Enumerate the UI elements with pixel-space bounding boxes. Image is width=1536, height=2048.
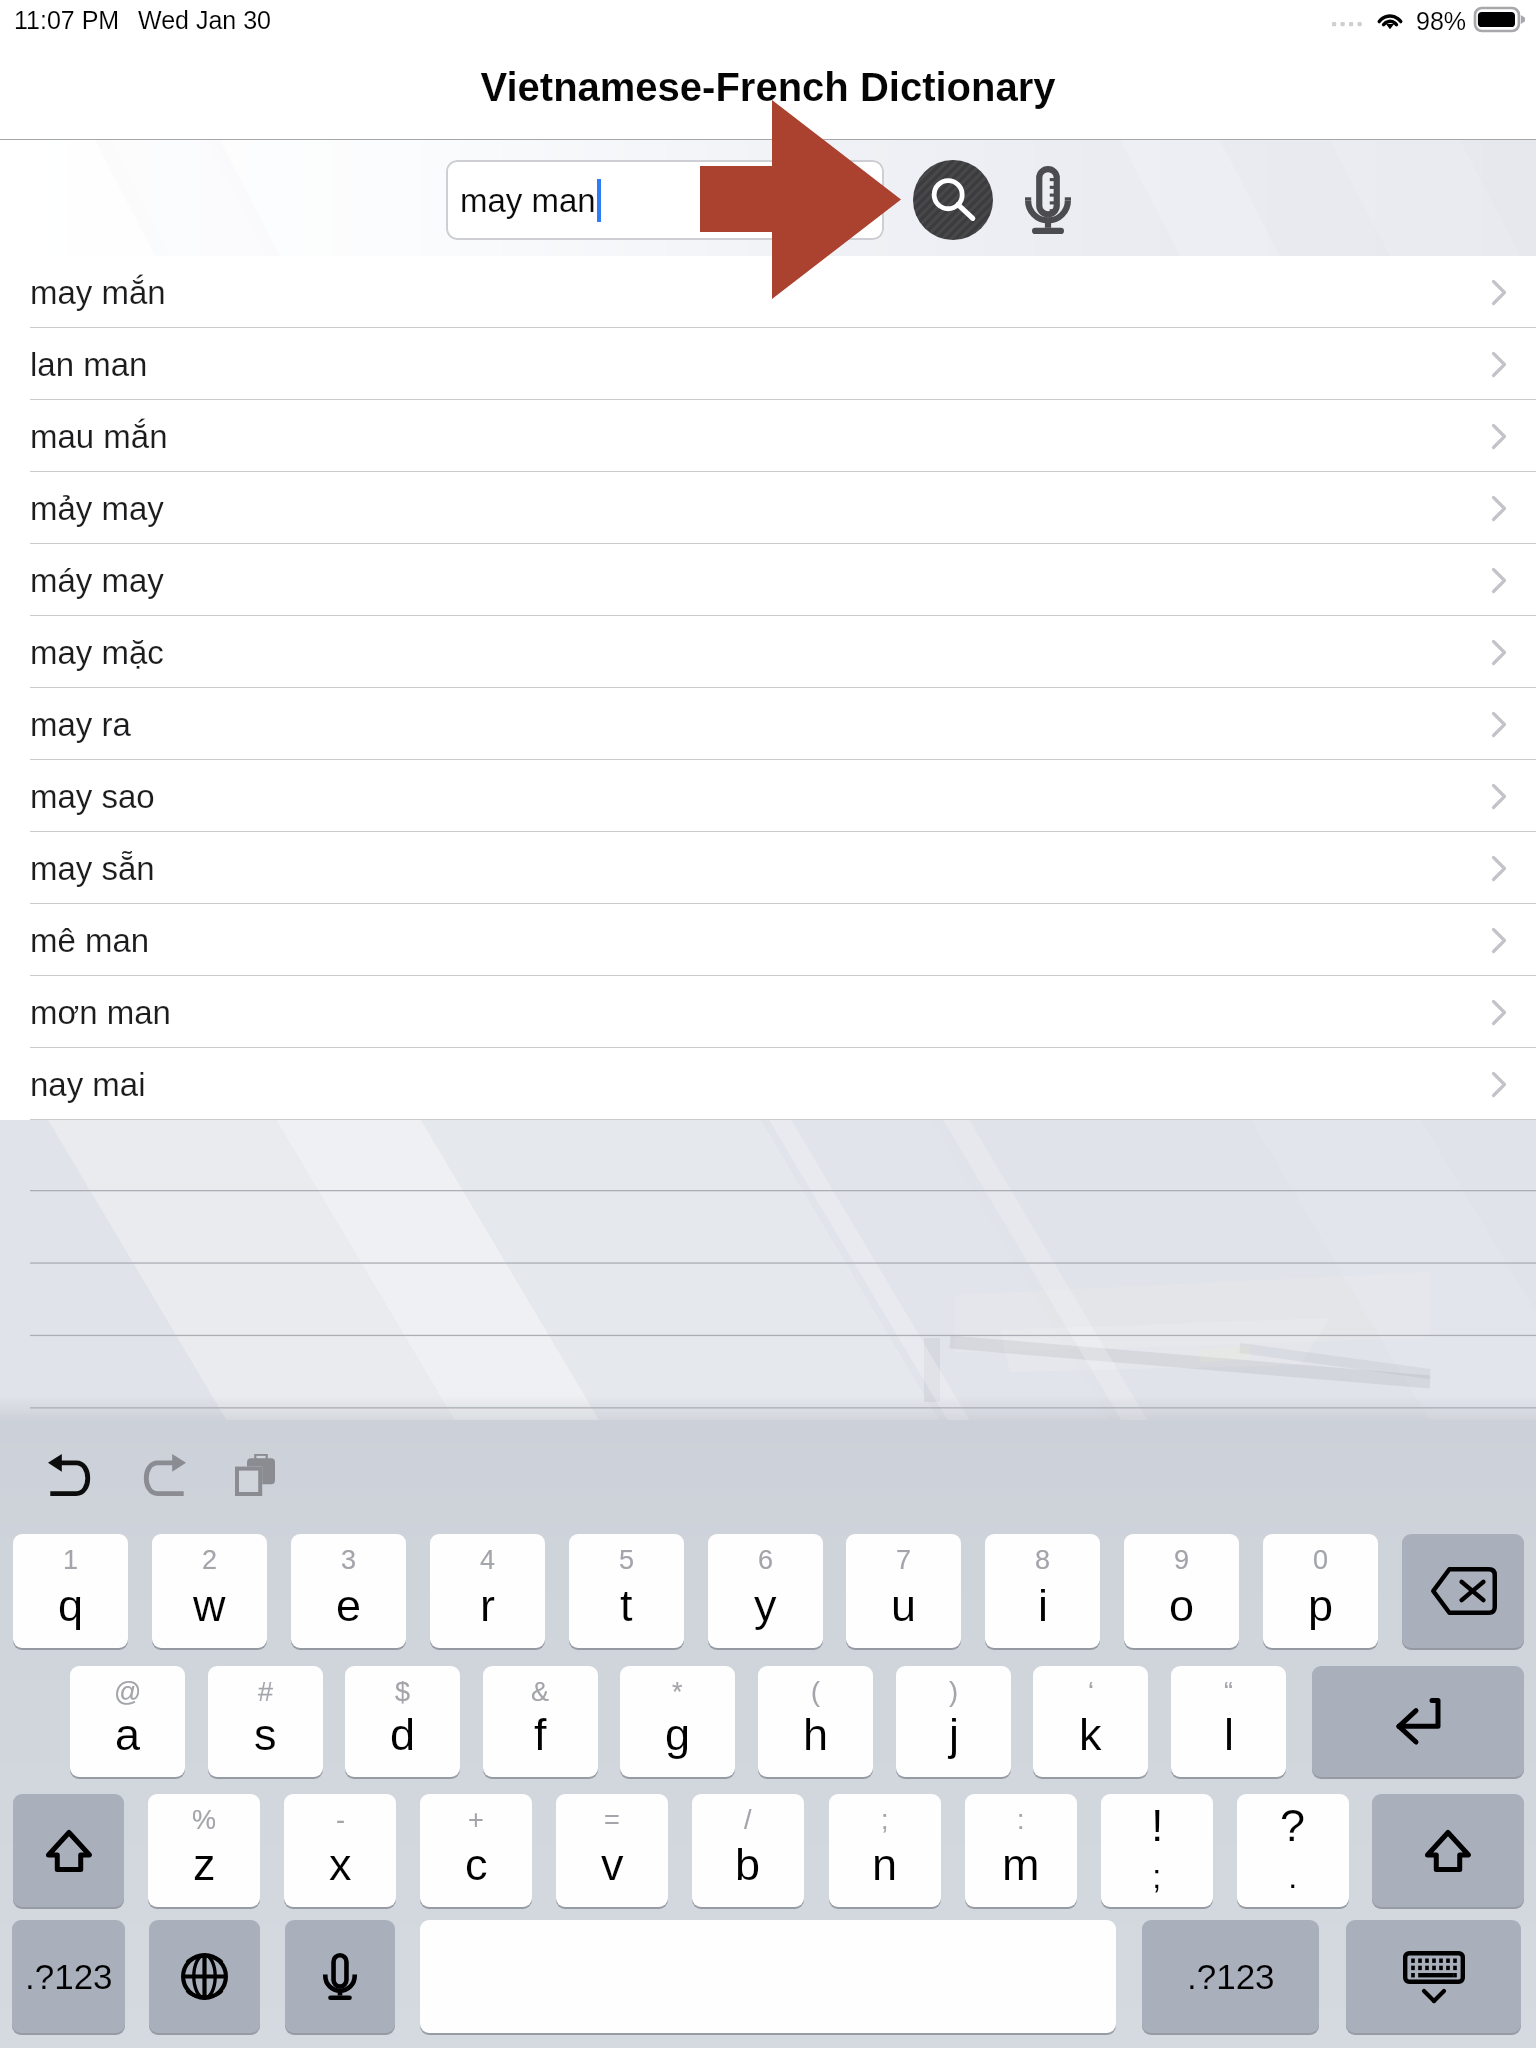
staticText: 6: [758, 1545, 774, 1575]
button[interactable]: Dictate: [285, 1920, 395, 2033]
staticText: 4: [480, 1545, 496, 1575]
staticText: &: [531, 1677, 550, 1707]
staticText: may mặc: [30, 634, 164, 671]
button[interactable]: Undo: [37, 1442, 105, 1508]
staticText: may mắn: [30, 274, 166, 311]
staticText: w: [193, 1580, 226, 1630]
button[interactable]: ?: [1237, 1794, 1349, 1907]
button[interactable]: @: [70, 1666, 185, 1777]
staticText: ;: [881, 1805, 889, 1835]
button[interactable]: 2: [152, 1534, 267, 1648]
staticText: =: [604, 1805, 620, 1835]
staticText: 8: [1035, 1545, 1051, 1575]
staticText: 0: [1313, 1545, 1329, 1575]
staticText: k: [1079, 1709, 1102, 1759]
staticText: -: [336, 1805, 345, 1835]
staticText: ;: [1152, 1857, 1162, 1895]
staticText: .?123: [25, 1957, 113, 1996]
button[interactable]: mê man: [0, 904, 1536, 976]
button[interactable]: mơn man: [0, 976, 1536, 1048]
button[interactable]: #: [208, 1666, 323, 1777]
button[interactable]: 9: [1124, 1534, 1239, 1648]
button[interactable]: mau mắn: [0, 400, 1536, 472]
button[interactable]: may mắn: [0, 256, 1536, 328]
staticText: u: [891, 1580, 917, 1630]
button[interactable]: 1: [13, 1534, 128, 1648]
button[interactable]: $: [345, 1666, 460, 1777]
button[interactable]: ;: [829, 1794, 941, 1907]
button[interactable]: =: [556, 1794, 668, 1907]
button[interactable]: *: [620, 1666, 735, 1777]
staticText: nay mai: [30, 1066, 146, 1103]
button[interactable]: &: [483, 1666, 598, 1777]
button[interactable]: 5: [569, 1534, 684, 1648]
button[interactable]: “: [1171, 1666, 1286, 1777]
staticText: .: [1288, 1857, 1298, 1895]
button[interactable]: may sao: [0, 760, 1536, 832]
staticText: 11:07 PM: [14, 6, 120, 34]
button[interactable]: -: [284, 1794, 396, 1907]
button[interactable]: 7: [846, 1534, 961, 1648]
button[interactable]: Change language: [149, 1920, 260, 2033]
staticText: r: [480, 1580, 495, 1630]
staticText: t: [620, 1580, 633, 1630]
staticText: y: [754, 1580, 777, 1630]
button[interactable]: 8: [985, 1534, 1100, 1648]
button[interactable]: Redo: [129, 1442, 197, 1508]
staticText: may sao: [30, 778, 155, 815]
staticText: g: [665, 1709, 691, 1759]
staticText: 2: [202, 1545, 218, 1575]
button[interactable]: !: [1101, 1794, 1213, 1907]
staticText: Wed Jan 30: [138, 6, 271, 34]
button[interactable]: Return: [1312, 1666, 1524, 1777]
staticText: @: [114, 1677, 142, 1707]
button[interactable]: %: [148, 1794, 260, 1907]
button[interactable]: 3: [291, 1534, 406, 1648]
staticText: %: [192, 1805, 217, 1835]
button[interactable]: ): [896, 1666, 1011, 1777]
button[interactable]: lan man: [0, 328, 1536, 400]
button[interactable]: 6: [708, 1534, 823, 1648]
button[interactable]: .?123: [12, 1920, 125, 2033]
staticText: c: [465, 1839, 488, 1889]
button[interactable]: may ra: [0, 688, 1536, 760]
button[interactable]: (: [758, 1666, 873, 1777]
staticText: 3: [341, 1545, 357, 1575]
staticText: l: [1224, 1709, 1234, 1759]
staticText: mê man: [30, 922, 150, 959]
button[interactable]: may man: [446, 160, 884, 240]
button[interactable]: máy may: [0, 544, 1536, 616]
button[interactable]: may sẵn: [0, 832, 1536, 904]
button[interactable]: mảy may: [0, 472, 1536, 544]
staticText: m: [1002, 1839, 1040, 1889]
button[interactable]: :: [965, 1794, 1077, 1907]
staticText: mơn man: [30, 994, 171, 1031]
staticText: lan man: [30, 346, 148, 383]
button[interactable]: +: [420, 1794, 532, 1907]
button[interactable]: Shift: [13, 1794, 124, 1907]
button[interactable]: may mặc: [0, 616, 1536, 688]
staticText: mảy may: [30, 490, 164, 527]
button[interactable]: Backspace: [1402, 1534, 1524, 1648]
button[interactable]: 4: [430, 1534, 545, 1648]
button[interactable]: 0: [1263, 1534, 1378, 1648]
button[interactable]: /: [692, 1794, 804, 1907]
staticText: may man: [460, 182, 596, 219]
staticText: Vietnamese-French Dictionary: [480, 65, 1056, 110]
button[interactable]: Shift: [1372, 1794, 1524, 1907]
staticText: p: [1308, 1580, 1334, 1630]
button[interactable]: Hide keyboard: [1346, 1920, 1521, 2033]
button[interactable]: .?123: [1142, 1920, 1319, 2033]
staticText: ‘: [1088, 1677, 1094, 1707]
staticText: x: [329, 1839, 352, 1889]
button[interactable]: Search: [913, 160, 993, 240]
staticText: z: [193, 1839, 216, 1889]
staticText: may sẵn: [30, 850, 155, 887]
button[interactable]: Paste: [220, 1442, 290, 1508]
button[interactable]: nay mai: [0, 1048, 1536, 1120]
staticText: *: [672, 1677, 683, 1707]
button[interactable]: ‘: [1033, 1666, 1148, 1777]
button[interactable]: Voice input: [1010, 160, 1086, 240]
staticText: a: [115, 1709, 141, 1759]
